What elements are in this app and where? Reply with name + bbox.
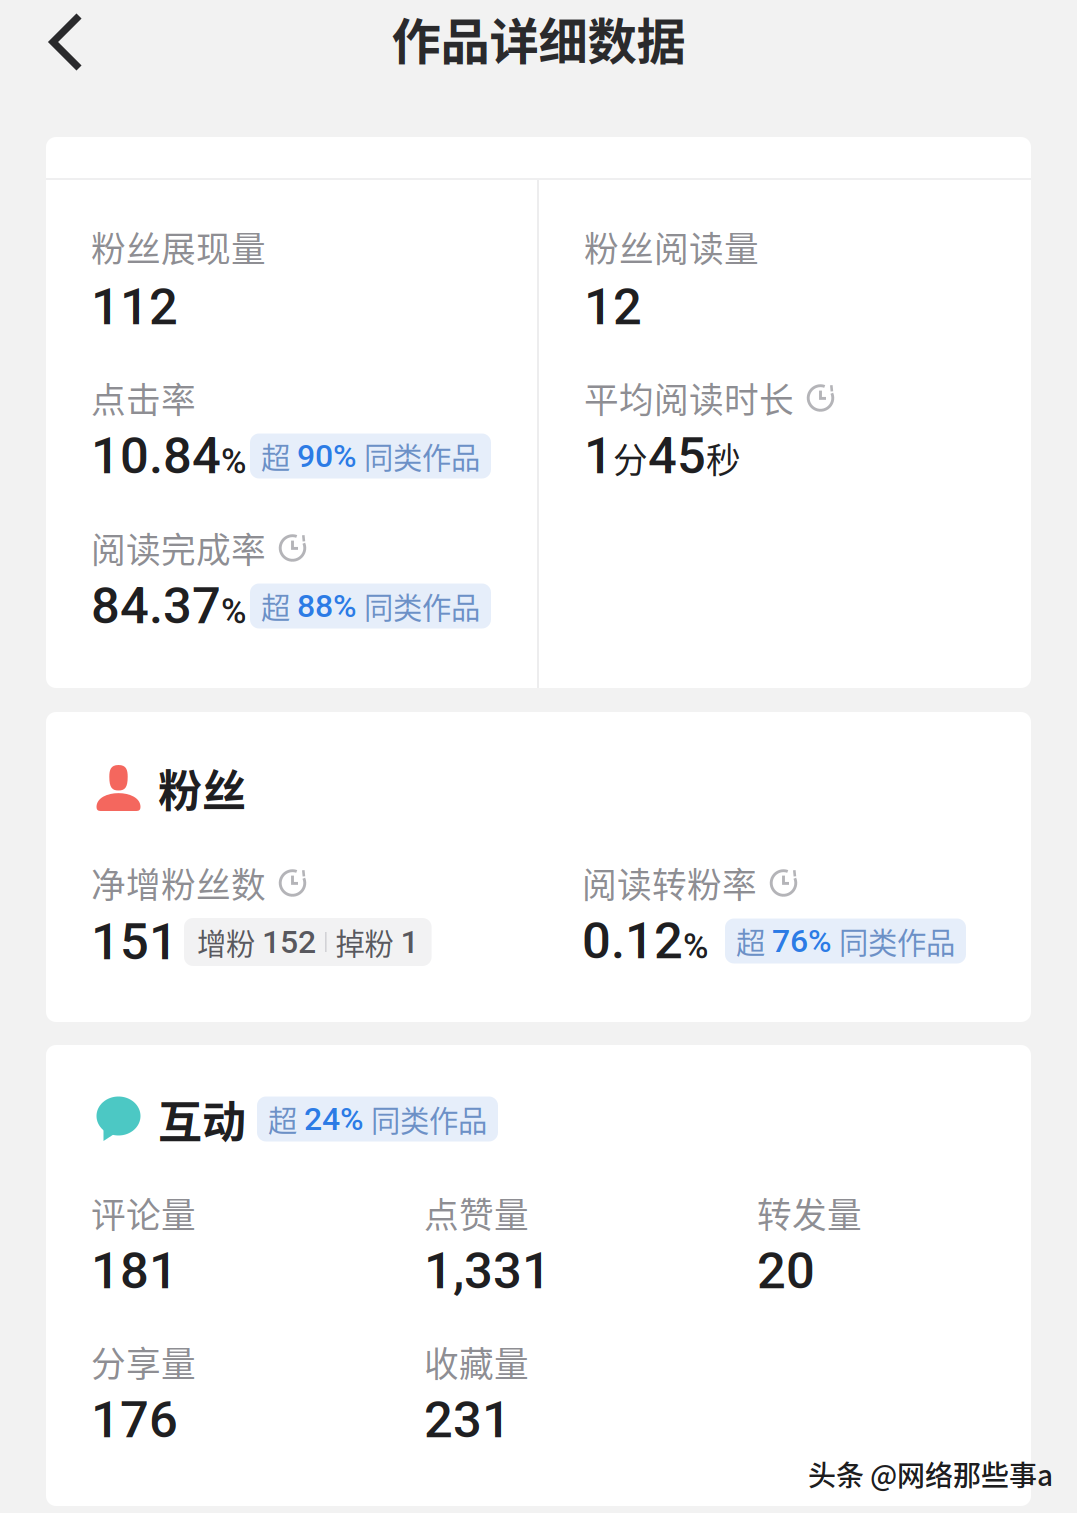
staticText: 作品详细数据 — [391, 2, 685, 74]
staticText: % — [221, 591, 247, 632]
staticText: % — [221, 441, 247, 482]
staticText: 点击率 — [91, 373, 196, 423]
staticText: % — [683, 926, 709, 967]
staticText: 超 — [261, 435, 297, 477]
staticText: 同类作品 — [832, 920, 955, 962]
staticText: 秒 — [706, 433, 741, 483]
staticText: 阅读转粉率 — [582, 858, 757, 908]
staticText: 分享量 — [91, 1337, 196, 1387]
button[interactable]: Back — [0, 0, 130, 84]
staticText: 20 — [757, 1241, 815, 1301]
staticText: 超 — [261, 585, 297, 627]
staticText: 45 — [648, 426, 706, 486]
staticText: 181 — [91, 1241, 178, 1301]
staticText: 176 — [91, 1390, 178, 1450]
staticText: 头条 @网络那些事a — [808, 1453, 1053, 1494]
staticText: 点赞量 — [424, 1188, 529, 1238]
staticText: 88% — [297, 587, 357, 625]
staticText: 同类作品 — [357, 585, 480, 627]
staticText: 超 — [268, 1098, 304, 1140]
staticText: 掉粉 — [336, 921, 401, 963]
staticText: 1 — [584, 426, 613, 486]
staticText: 阅读完成率 — [91, 523, 266, 573]
staticText: 同类作品 — [357, 435, 480, 477]
staticText: 分 — [613, 433, 648, 483]
staticText: 平均阅读时长 — [584, 373, 794, 423]
staticText: 1,331 — [424, 1241, 551, 1301]
staticText: 超 — [736, 920, 772, 962]
staticText: 转发量 — [757, 1188, 862, 1238]
staticText: 粉丝阅读量 — [584, 222, 759, 272]
staticText: 76% — [772, 922, 832, 960]
staticText: 10.84 — [91, 426, 221, 486]
staticText: 粉丝 — [158, 756, 246, 820]
staticText: 152 — [262, 923, 316, 961]
staticText: 90% — [297, 437, 357, 475]
staticText: 评论量 — [91, 1188, 196, 1238]
staticText: 净增粉丝数 — [91, 858, 266, 908]
staticText: 互动 — [158, 1087, 246, 1151]
staticText: 0.12 — [582, 911, 683, 971]
staticText: 112 — [91, 277, 178, 337]
staticText: 1 — [401, 923, 419, 961]
staticText: 同类作品 — [364, 1098, 487, 1140]
staticText: 84.37 — [91, 576, 221, 636]
staticText: 12 — [584, 277, 642, 337]
staticText: 收藏量 — [424, 1337, 529, 1387]
staticText: 151 — [91, 912, 178, 972]
staticText: 增粉 — [197, 921, 262, 963]
staticText: 粉丝展现量 — [91, 222, 266, 272]
staticText: 24% — [304, 1100, 364, 1138]
staticText: 231 — [424, 1390, 511, 1450]
